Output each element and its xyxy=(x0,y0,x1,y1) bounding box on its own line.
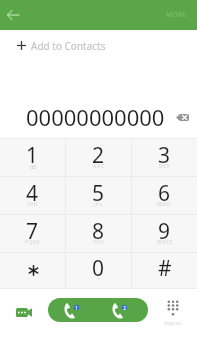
button[interactable]: 8 xyxy=(66,215,131,252)
staticText: PQRS xyxy=(25,239,41,246)
button[interactable]: Backspace xyxy=(171,106,193,128)
staticText: GHI xyxy=(27,201,38,208)
staticText: 4 xyxy=(26,179,39,208)
staticText: 2 xyxy=(123,305,126,310)
button[interactable]: 6 xyxy=(132,177,197,214)
staticText: 2 xyxy=(92,141,105,170)
staticText: TUV xyxy=(93,239,105,246)
staticText: 6 xyxy=(158,179,171,208)
staticText: 9 xyxy=(158,217,171,246)
button[interactable]: Call xyxy=(48,298,148,322)
staticText: MORE xyxy=(166,10,187,20)
staticText: 7 xyxy=(26,217,39,246)
button[interactable]: Keypad xyxy=(159,295,187,331)
staticText: 3 xyxy=(158,141,171,170)
staticText: 0 xyxy=(92,254,105,283)
button[interactable]: Back xyxy=(0,0,26,30)
button[interactable]: 0 xyxy=(66,253,131,288)
button[interactable]: 4 xyxy=(0,177,65,214)
staticText: MNO xyxy=(157,201,172,208)
staticText: + xyxy=(97,276,101,283)
staticText: # xyxy=(158,254,172,283)
button[interactable]: Add to Contacts xyxy=(0,30,197,61)
staticText: Keypad xyxy=(164,320,182,327)
button[interactable]: 7 xyxy=(0,215,65,252)
staticText: 1 xyxy=(75,305,78,310)
staticText: ABC xyxy=(93,163,105,170)
button[interactable]: 3 xyxy=(132,139,197,176)
button[interactable]: Video call xyxy=(6,299,42,325)
staticText: 1 xyxy=(26,141,39,170)
staticText: Add to Contacts xyxy=(31,39,106,53)
button[interactable]: 1 xyxy=(0,139,65,176)
staticText: WXYZ xyxy=(157,239,173,246)
button[interactable]: 5 xyxy=(66,177,131,214)
staticText: 00000000000 xyxy=(26,102,165,132)
button[interactable]: 9 xyxy=(132,215,197,252)
staticText: JKL xyxy=(94,201,103,208)
button[interactable]: MORE xyxy=(166,0,187,30)
button[interactable] xyxy=(0,253,65,288)
staticText: 5 xyxy=(92,179,105,208)
button[interactable]: # xyxy=(132,253,197,288)
button[interactable]: 2 xyxy=(66,139,131,176)
staticText: DEF xyxy=(159,163,170,170)
staticText: 8 xyxy=(92,217,105,246)
